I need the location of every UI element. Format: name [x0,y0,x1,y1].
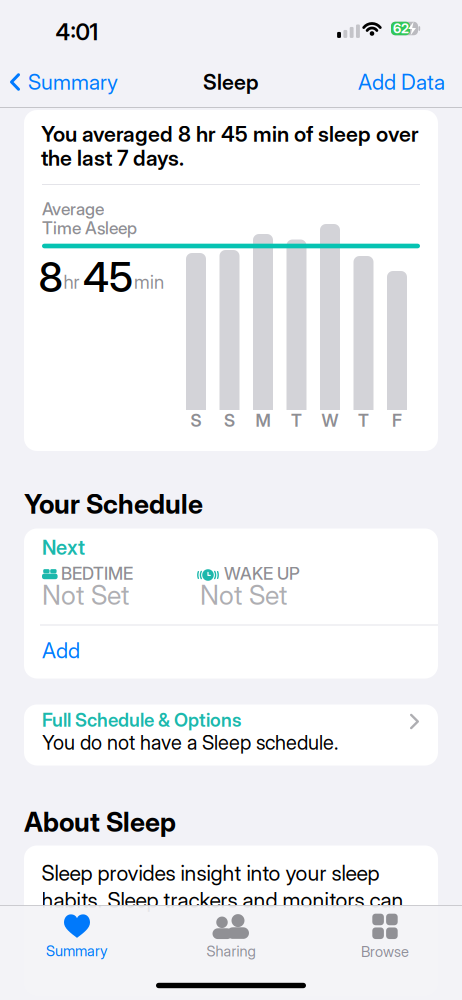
staticText: T [358,410,369,431]
staticText: Summary [46,942,108,960]
staticText: Add [42,638,80,663]
staticText: M [255,410,270,431]
staticText: T [291,410,302,431]
staticText: 4:01 [55,19,98,45]
staticText: WAKE UP [224,563,300,584]
staticText: W [321,410,338,431]
staticText: Full Schedule & Options [42,709,241,731]
staticText: 8 [38,253,63,301]
button[interactable]: Summary [10,66,160,98]
staticText: Not Set [200,579,287,611]
staticText: Browse [361,943,409,960]
staticText: Sharing [206,943,255,960]
staticText: Sleep provides insight into your sleep [41,860,379,886]
staticText: Average [42,199,104,219]
button[interactable]: Summary [46,914,108,960]
button[interactable]: Add [42,625,438,675]
staticText: the last 7 days. [41,145,184,171]
staticText: habits. Sleep trackers and monitors can [41,887,403,913]
staticText: BEDTIME [61,563,133,584]
staticText: S [224,410,235,431]
button[interactable]: Full Schedule & Options [24,704,438,765]
staticText: About Sleep [24,806,176,838]
staticText: 62 [393,21,409,36]
staticText: Add Data [358,69,445,95]
staticText: Your Schedule [24,488,203,520]
staticText: 45 [83,253,133,301]
staticText: You averaged 8 hr 45 min of sleep over [41,121,419,147]
staticText: You do not have a Sleep schedule. [42,731,338,754]
staticText: hr [63,271,79,293]
staticText: F [392,410,402,431]
staticText: Time Asleep [42,218,137,238]
button[interactable]: Sharing [206,914,255,960]
staticText: Next [42,536,85,559]
staticText: Not Set [42,579,129,611]
staticText: S [190,410,201,431]
staticText: Summary [28,69,118,95]
button[interactable]: Browse [361,914,409,960]
staticText: min [134,271,164,293]
staticText: Sleep [203,69,259,95]
button[interactable]: Add Data [325,66,445,98]
